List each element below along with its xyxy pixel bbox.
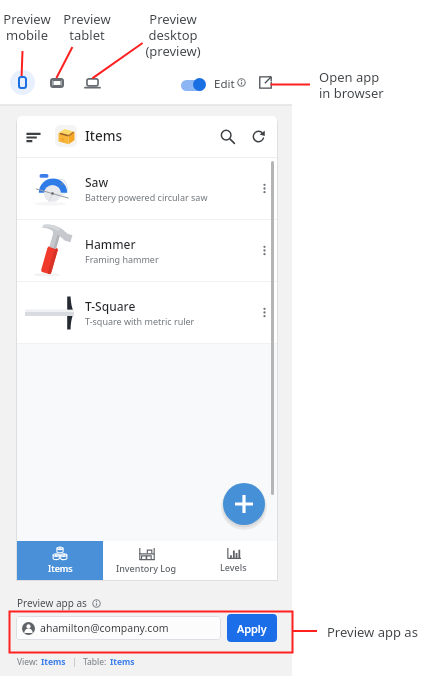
staticText: T-Square	[85, 298, 136, 314]
button[interactable]: Preview tablet	[45, 71, 69, 95]
button[interactable]: Items	[110, 656, 135, 668]
staticText: Items	[48, 562, 73, 574]
staticText: Hammer	[85, 236, 136, 252]
staticText: Preview app as	[17, 596, 87, 610]
button[interactable]: Refresh	[248, 126, 268, 146]
button[interactable]: Items	[41, 656, 66, 668]
button[interactable]: Edit toggle	[178, 74, 208, 91]
button[interactable]: Sort	[24, 128, 42, 146]
button[interactable]: Hammer	[17, 220, 277, 281]
staticText: Saw	[85, 174, 109, 190]
button[interactable]: Search	[217, 126, 237, 146]
button[interactable]: More options	[251, 158, 277, 219]
button[interactable]: More options	[251, 282, 277, 343]
staticText: Preview mobile	[0, 10, 67, 43]
staticText: Edit	[214, 76, 235, 92]
button[interactable]: ahamilton@company.com	[16, 616, 221, 640]
staticText: View:	[17, 656, 38, 668]
button[interactable]: Add	[223, 483, 265, 525]
button[interactable]: Items	[17, 541, 103, 580]
staticText: Open app in browser	[319, 68, 409, 101]
staticText: Preview desktop (preview)	[133, 10, 213, 59]
button[interactable]: Saw	[17, 158, 277, 219]
staticText: Table:	[83, 656, 107, 668]
staticText: Preview app as	[327, 623, 427, 641]
staticText: Framing hammer	[85, 253, 159, 265]
button[interactable]: Apply	[227, 614, 277, 642]
staticText: Inventory Log	[116, 562, 177, 574]
staticText: T-square with metric ruler	[85, 315, 195, 327]
button[interactable]: More options	[251, 220, 277, 281]
button[interactable]: Open app in browser	[259, 76, 272, 89]
staticText: ahamilton@company.com	[40, 621, 169, 635]
button[interactable]: Preview mobile	[10, 70, 35, 95]
staticText: Apply	[237, 621, 267, 636]
staticText: Levels	[220, 561, 247, 573]
staticText: |	[72, 656, 77, 668]
staticText: Items	[85, 127, 123, 145]
staticText: Preview tablet	[47, 10, 127, 43]
button[interactable]: Inventory Log	[103, 541, 190, 580]
button[interactable]: Levels	[190, 541, 277, 580]
staticText: Battery powered circular saw	[85, 191, 208, 203]
button[interactable]: Preview desktop	[80, 71, 104, 95]
button[interactable]: T-Square	[17, 282, 277, 343]
